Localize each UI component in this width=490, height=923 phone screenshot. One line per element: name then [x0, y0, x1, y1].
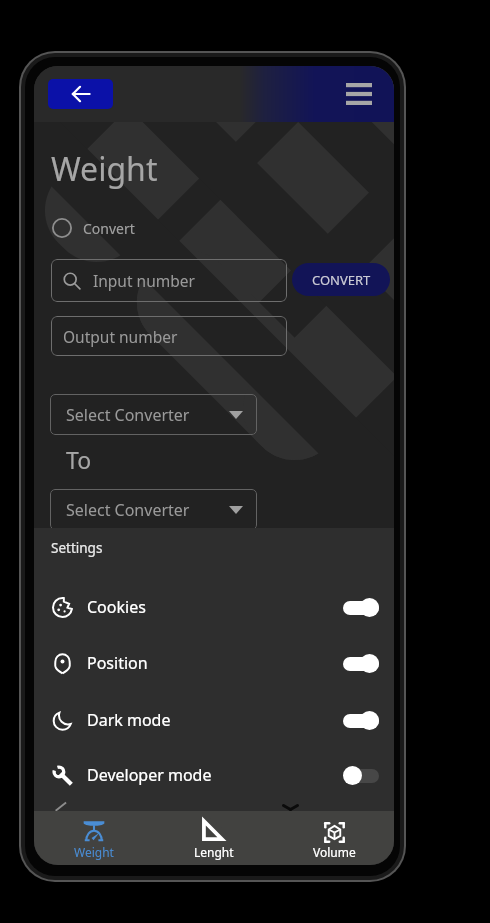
- staticText: Settings: [51, 539, 103, 557]
- staticText: Select Converter: [66, 404, 190, 426]
- staticText: Convert: [83, 219, 135, 238]
- button[interactable]: Select Converter: [50, 489, 257, 530]
- staticText: To: [66, 444, 92, 475]
- staticText: Select Converter: [66, 499, 190, 521]
- staticText: Dark mode: [87, 709, 171, 731]
- button[interactable]: Output number: [51, 316, 287, 356]
- staticText: Volume: [313, 844, 356, 860]
- staticText: Cookies: [87, 596, 146, 618]
- button[interactable]: Cookies: [34, 579, 394, 635]
- staticText: Position: [87, 652, 148, 674]
- button[interactable]: Dark mode: [34, 692, 394, 748]
- staticText: Weight: [74, 844, 114, 860]
- staticText: Lenght: [194, 844, 234, 860]
- button[interactable]: Volume: [274, 811, 394, 865]
- staticText: Output number: [63, 326, 178, 347]
- staticText: Input number: [93, 270, 195, 291]
- button[interactable]: Select Converter: [50, 394, 257, 435]
- button[interactable]: Menu: [341, 76, 377, 112]
- button[interactable]: Lenght: [154, 811, 274, 865]
- staticText: Developer mode: [87, 764, 212, 786]
- button[interactable]: Weight: [34, 811, 154, 865]
- button[interactable]: Position: [34, 635, 394, 691]
- staticText: CONVERT: [312, 271, 371, 289]
- staticText: Weight: [51, 147, 158, 191]
- button[interactable]: Convert: [52, 214, 135, 242]
- button[interactable]: Input number: [51, 259, 287, 302]
- button[interactable]: Developer mode: [34, 747, 394, 803]
- button[interactable]: Back: [48, 79, 113, 109]
- button[interactable]: CONVERT: [292, 263, 390, 296]
